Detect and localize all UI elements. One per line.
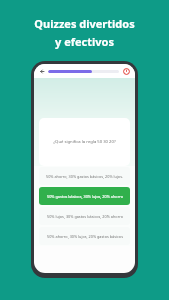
button[interactable]: 50% ahorro, 30% lujos, 20% gastos básico… [39,227,130,245]
staticText: 50% lujos, 30% gastos básicos, 20% ahorr… [47,214,123,219]
staticText: y efectivos [55,34,114,49]
staticText: 50% ahorro, 30% lujos, 20% gastos básico… [47,234,123,239]
button[interactable]: Back [38,67,46,75]
staticText: ¿Qué significa la regla 50 30 20? [53,139,116,145]
button[interactable]: 50% ahorro, 30% gastos básicos, 20% lujo… [39,167,130,185]
button[interactable]: 50% lujos, 30% gastos básicos, 20% ahorr… [39,207,130,225]
button[interactable]: 50% gastos básicos, 30% lujos, 20% ahorr… [39,187,130,205]
button[interactable]: Timer [122,67,131,76]
staticText: Quizzes divertidos [34,16,135,31]
staticText: 50% ahorro, 30% gastos básicos, 20% lujo… [46,174,123,179]
staticText: 50% gastos básicos, 30% lujos, 20% ahorr… [47,194,123,199]
